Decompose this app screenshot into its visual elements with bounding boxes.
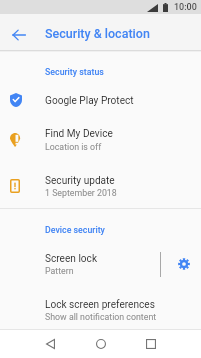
staticText: Security status bbox=[45, 67, 104, 77]
button[interactable] bbox=[0, 248, 150, 280]
staticText: Security update bbox=[45, 175, 115, 187]
staticText: Pattern bbox=[45, 266, 74, 276]
button[interactable]: Recent apps bbox=[136, 329, 165, 358]
staticText: Show all notification content bbox=[45, 312, 157, 322]
button[interactable]: Screen lock settings bbox=[166, 248, 201, 280]
staticText: 10:00 bbox=[174, 2, 197, 13]
staticText: Security & location bbox=[45, 26, 150, 41]
button[interactable] bbox=[0, 294, 201, 326]
staticText: Google Play Protect bbox=[45, 95, 134, 107]
button[interactable]: Back bbox=[36, 329, 65, 358]
staticText: Device security bbox=[45, 225, 105, 235]
staticText: 1 September 2018 bbox=[45, 188, 117, 198]
staticText: Lock screen preferences bbox=[45, 299, 155, 311]
button[interactable]: Home bbox=[86, 329, 115, 358]
staticText: Location is off bbox=[45, 142, 102, 152]
button[interactable] bbox=[0, 88, 201, 115]
button[interactable] bbox=[0, 170, 201, 202]
staticText: Find My Device bbox=[45, 128, 113, 140]
button[interactable] bbox=[0, 124, 201, 156]
staticText: Screen lock bbox=[45, 253, 97, 265]
button[interactable]: Navigate up bbox=[5, 21, 33, 49]
